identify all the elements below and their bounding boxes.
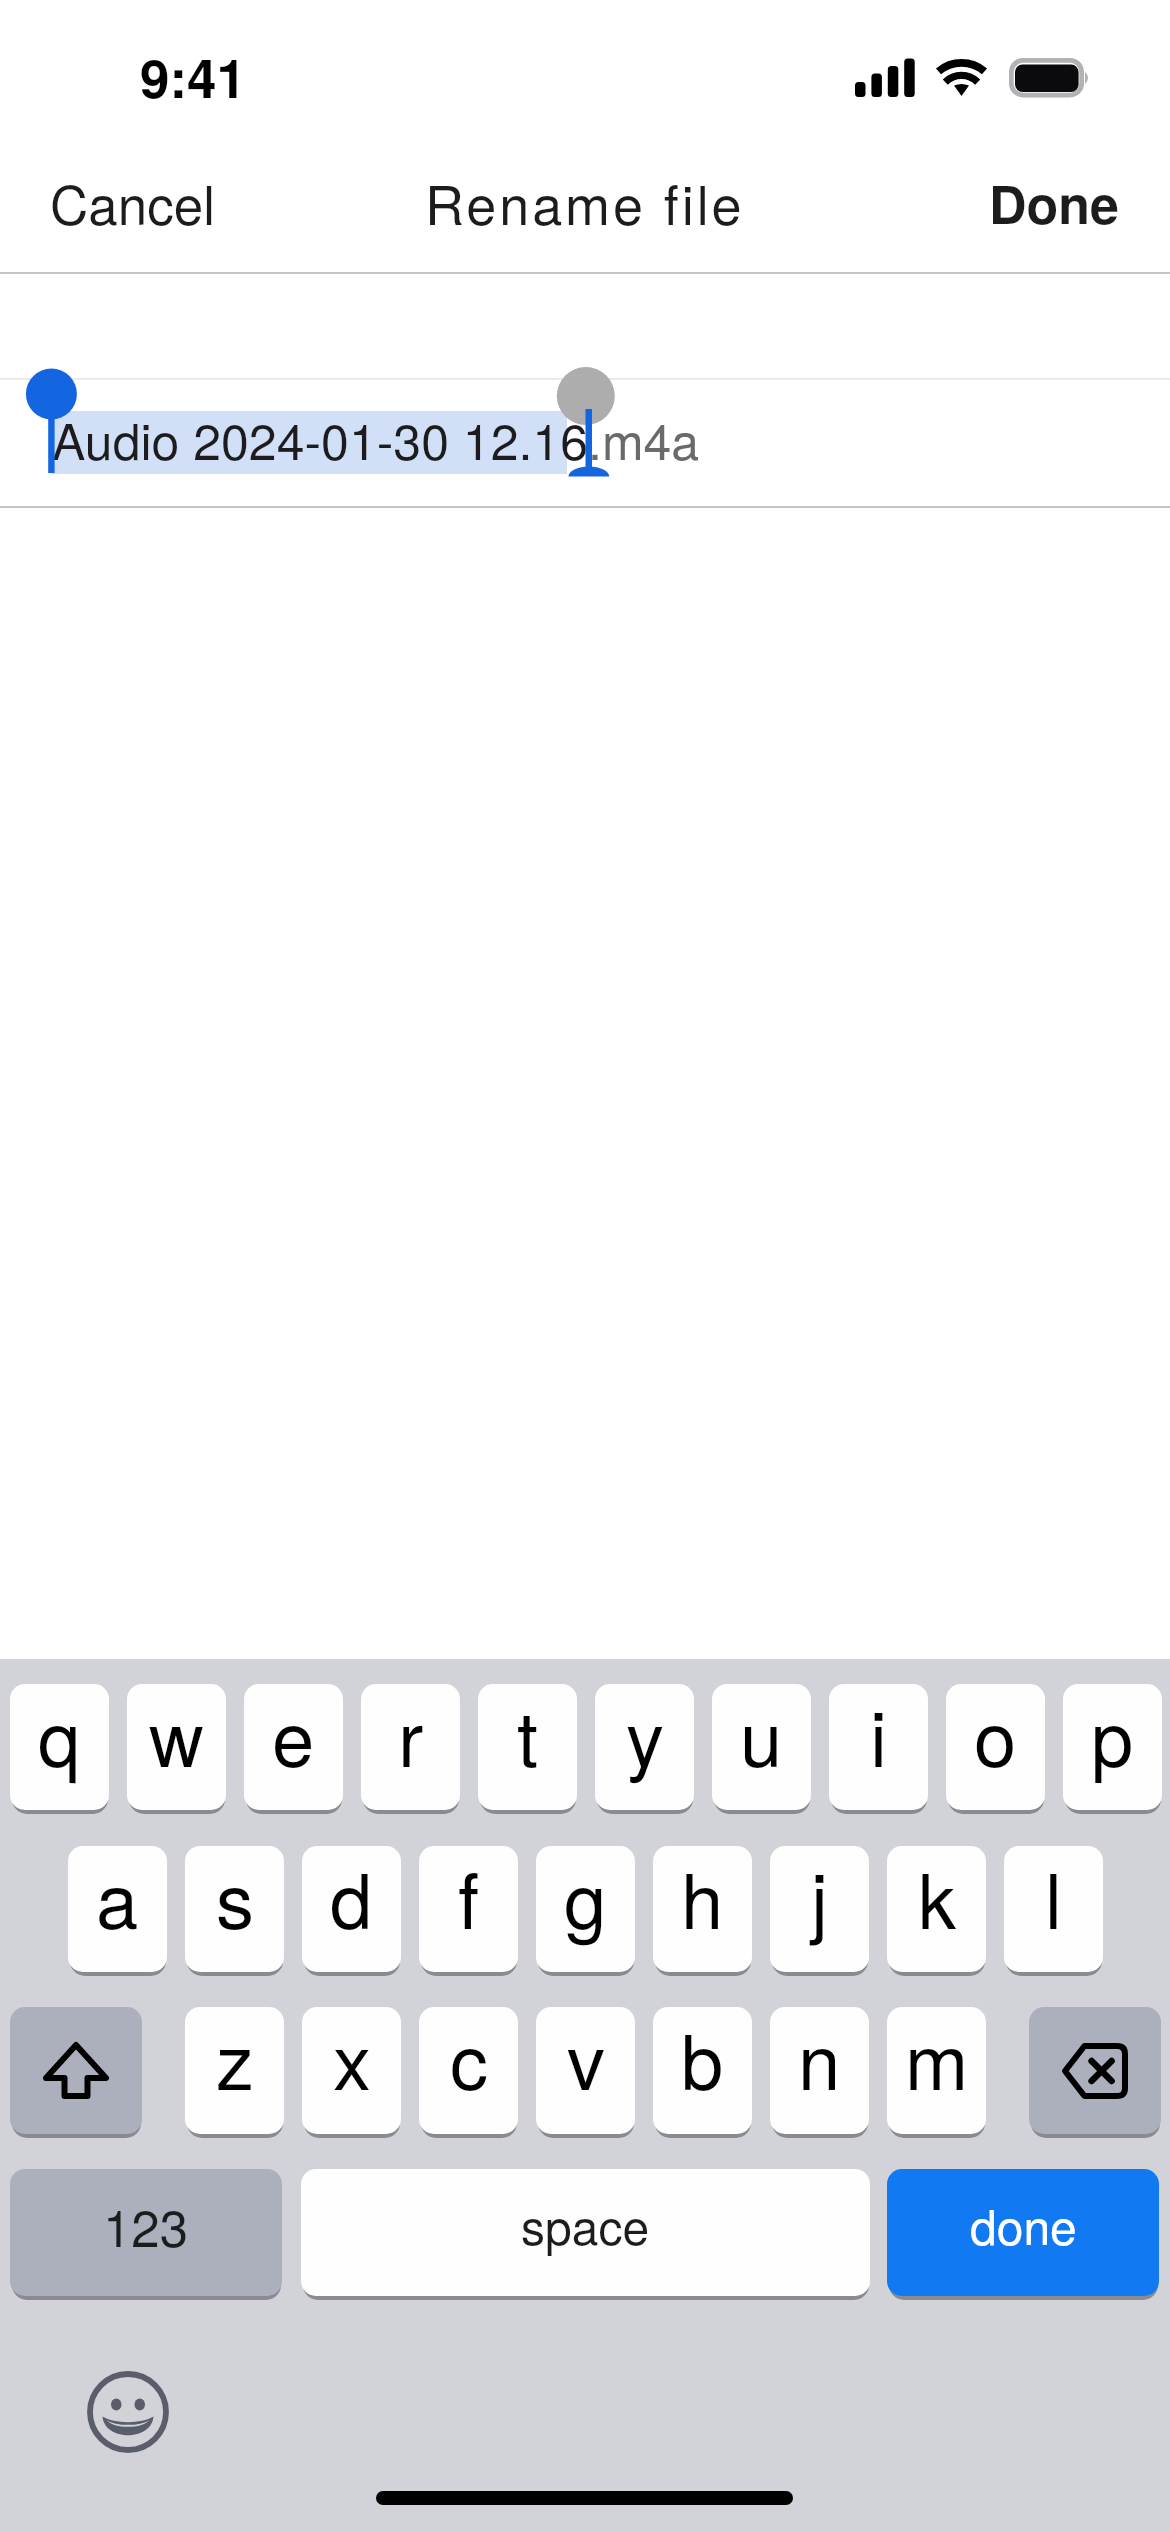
staticText: o (974, 1684, 1017, 1789)
button[interactable]: x (302, 2007, 401, 2138)
button[interactable]: v (536, 2007, 635, 2138)
button[interactable]: j (770, 1846, 869, 1976)
button[interactable]: Cancel (0, 144, 249, 260)
staticText: j (811, 1846, 828, 1951)
staticText: b (681, 2007, 724, 2112)
staticText: Rename file (425, 163, 745, 240)
staticText: g (564, 1846, 607, 1951)
button[interactable]: s (185, 1846, 284, 1976)
staticText: p (1091, 1684, 1134, 1789)
staticText: .m4a (588, 403, 700, 475)
button[interactable]: u (712, 1684, 811, 1814)
button[interactable]: o (946, 1684, 1045, 1814)
button[interactable]: 123 (10, 2169, 282, 2300)
staticText: space (521, 2190, 650, 2259)
button[interactable]: p (1063, 1684, 1162, 1814)
button[interactable]: b (653, 2007, 752, 2138)
button[interactable]: m (887, 2007, 986, 2138)
button[interactable]: d (302, 1846, 401, 1976)
staticText: Audio 2024-01-30 12.16 (52, 403, 588, 475)
staticText: 123 (103, 2188, 189, 2261)
staticText: d (330, 1846, 373, 1951)
button[interactable]: t (478, 1684, 577, 1814)
button[interactable]: k (887, 1846, 986, 1976)
button[interactable]: q (10, 1684, 109, 1814)
button[interactable]: e (244, 1684, 343, 1814)
staticText: a (96, 1846, 139, 1951)
staticText: k (918, 1846, 956, 1951)
button[interactable]: done (887, 2169, 1159, 2300)
button[interactable]: Done (955, 145, 1170, 259)
staticText: w (149, 1684, 204, 1789)
button[interactable]: Backspace (1029, 2007, 1161, 2138)
button[interactable] (0, 378, 1170, 506)
staticText: r (398, 1684, 424, 1789)
button[interactable]: Shift (10, 2007, 142, 2138)
staticText: y (626, 1684, 664, 1789)
staticText: s (216, 1846, 254, 1951)
button[interactable]: r (361, 1684, 460, 1814)
staticText: v (567, 2007, 605, 2112)
staticText: i (870, 1684, 887, 1789)
staticText: c (450, 2007, 488, 2112)
button[interactable]: n (770, 2007, 869, 2138)
button[interactable]: Emoji keyboard (87, 2371, 169, 2453)
staticText: e (272, 1684, 315, 1789)
staticText: n (798, 2007, 841, 2112)
staticText: z (216, 2007, 254, 2112)
button[interactable]: y (595, 1684, 694, 1814)
button[interactable]: g (536, 1846, 635, 1976)
button[interactable]: a (68, 1846, 167, 1976)
button[interactable]: f (419, 1846, 518, 1976)
staticText: 9:41 (140, 38, 247, 114)
staticText: done (970, 2190, 1077, 2259)
button[interactable]: h (653, 1846, 752, 1976)
staticText: l (1045, 1846, 1062, 1951)
staticText: Done (989, 165, 1120, 239)
staticText: q (38, 1684, 81, 1789)
button[interactable]: l (1004, 1846, 1103, 1976)
button[interactable]: c (419, 2007, 518, 2138)
button[interactable]: z (185, 2007, 284, 2138)
staticText: x (333, 2007, 371, 2112)
button[interactable]: w (127, 1684, 226, 1814)
button[interactable]: space (301, 2169, 870, 2300)
staticText: Cancel (50, 164, 215, 240)
staticText: h (681, 1846, 724, 1951)
staticText: f (458, 1846, 480, 1951)
staticText: m (905, 2007, 969, 2112)
staticText: t (517, 1684, 539, 1789)
staticText: u (740, 1684, 783, 1789)
button[interactable]: i (829, 1684, 928, 1814)
